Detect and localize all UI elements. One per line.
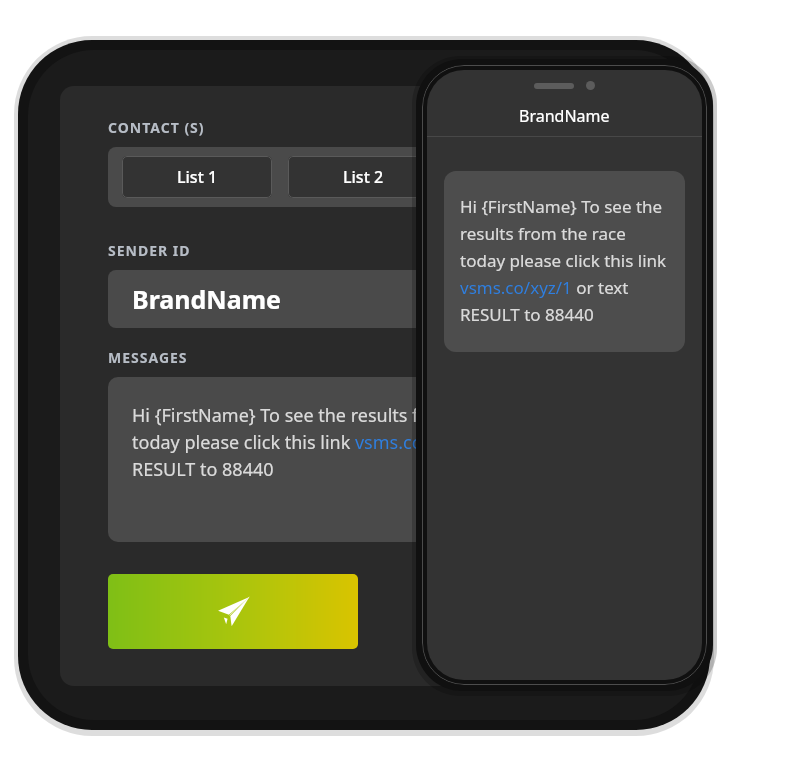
staticText: MESSAGES [108, 348, 188, 367]
button[interactable]: Hi {FirstName} To see the results from t… [108, 377, 549, 542]
staticText: List 1 [177, 166, 218, 188]
staticText: Hi {FirstName} To see the results from t… [460, 195, 673, 326]
staticText: Hi {FirstName} To see the results from t… [132, 403, 535, 481]
button[interactable]: List 2 [288, 156, 438, 198]
button[interactable]: List 1 [122, 156, 272, 198]
button[interactable]: BrandName [108, 270, 549, 328]
staticText: BrandName [132, 282, 281, 316]
button[interactable]: Hi {FirstName} To see the results from t… [444, 171, 685, 352]
button[interactable]: Send [108, 574, 358, 649]
staticText: List 2 [343, 166, 384, 188]
staticText: CONTACT (S) [108, 118, 205, 137]
staticText: SENDER ID [108, 241, 191, 260]
staticText: BrandName [519, 105, 610, 127]
